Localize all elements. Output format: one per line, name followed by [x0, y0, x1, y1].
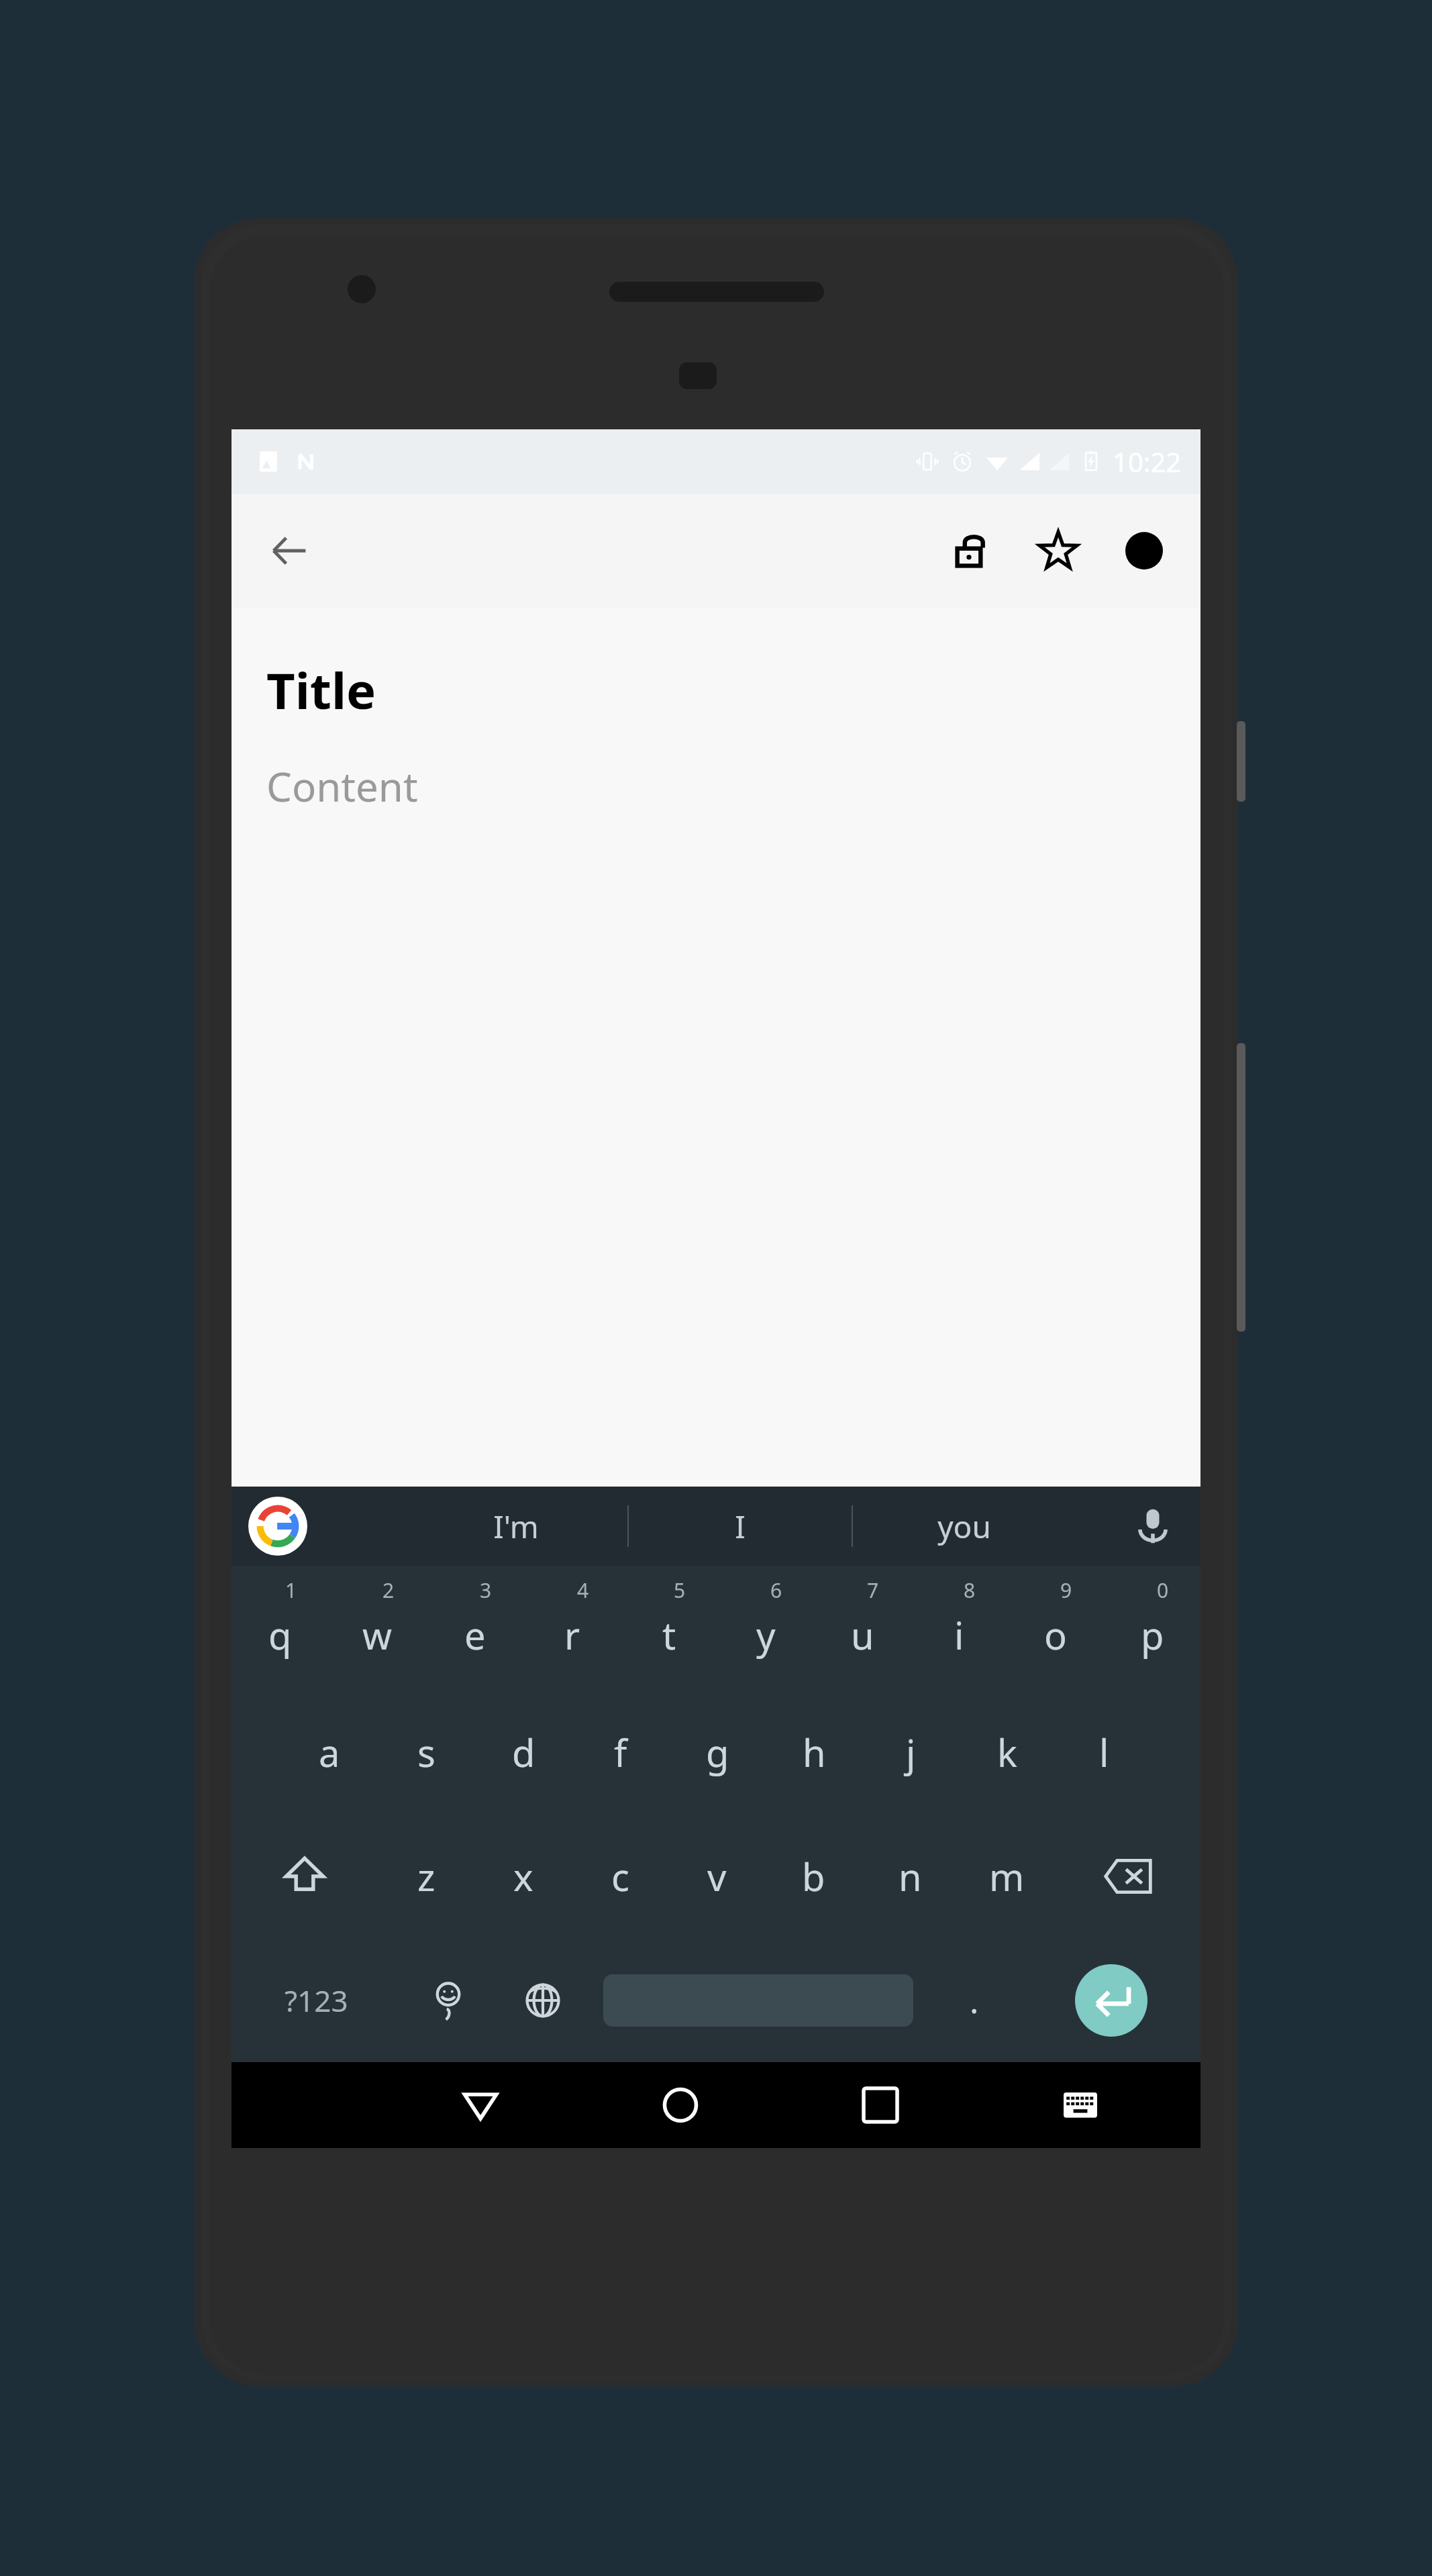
staticText: j	[906, 1727, 916, 1778]
staticText: m	[989, 1851, 1025, 1902]
staticText: y	[756, 1609, 776, 1660]
staticText: h	[803, 1727, 826, 1778]
staticText: I'm	[493, 1505, 539, 1548]
button[interactable]: Back	[246, 508, 332, 594]
button[interactable]: Voice input	[1121, 1495, 1184, 1558]
button[interactable]: Space	[590, 1938, 927, 2062]
button[interactable]: 4	[523, 1566, 621, 1690]
button[interactable]: Back	[380, 2062, 580, 2148]
button[interactable]: Lock note	[929, 508, 1015, 594]
button[interactable]: a	[280, 1690, 378, 1814]
staticText: 8	[964, 1576, 976, 1604]
staticText: o	[1044, 1609, 1067, 1660]
button[interactable]: 0	[1104, 1566, 1200, 1690]
staticText: a	[319, 1727, 340, 1778]
staticText: ?123	[285, 1980, 348, 2021]
staticText: w	[362, 1609, 393, 1660]
button[interactable]: Backspace	[1055, 1814, 1200, 1938]
button[interactable]: z	[378, 1814, 475, 1938]
button[interactable]: Shift	[232, 1814, 378, 1938]
button[interactable]: 8	[911, 1566, 1007, 1690]
staticText: 0	[1157, 1576, 1169, 1604]
button[interactable]: Title	[232, 608, 1200, 1487]
staticText: p	[1141, 1609, 1164, 1660]
staticText: v	[707, 1851, 727, 1902]
staticText: .	[970, 1978, 979, 2023]
staticText: Title	[266, 656, 376, 724]
button[interactable]: .	[927, 1938, 1021, 2062]
staticText: f	[614, 1727, 627, 1778]
button[interactable]: Change language	[495, 1938, 590, 2062]
staticText: 10:22	[1113, 443, 1182, 480]
staticText: g	[706, 1727, 729, 1778]
staticText: b	[802, 1851, 825, 1902]
button[interactable]: I	[629, 1487, 852, 1566]
staticText: 7	[867, 1576, 879, 1604]
staticText: 4	[577, 1576, 589, 1604]
staticText: you	[937, 1505, 991, 1548]
button[interactable]: Favorite	[1015, 508, 1101, 594]
button[interactable]: d	[475, 1690, 572, 1814]
staticText: 1	[285, 1576, 297, 1604]
staticText: u	[851, 1609, 874, 1660]
staticText: t	[662, 1609, 676, 1660]
button[interactable]: 6	[717, 1566, 814, 1690]
button[interactable]: Emoji	[401, 1938, 495, 2062]
staticText: 5	[674, 1576, 686, 1604]
staticText: z	[417, 1851, 436, 1902]
staticText: e	[464, 1609, 486, 1660]
staticText: 3	[480, 1576, 492, 1604]
button[interactable]: f	[572, 1690, 669, 1814]
staticText: i	[954, 1609, 964, 1660]
staticText: d	[512, 1727, 535, 1778]
button[interactable]: s	[378, 1690, 475, 1814]
button[interactable]: 1	[232, 1566, 329, 1690]
button[interactable]: ?123	[232, 1938, 401, 2062]
staticText: x	[513, 1851, 533, 1902]
button[interactable]: k	[959, 1690, 1056, 1814]
button[interactable]: 7	[814, 1566, 911, 1690]
button[interactable]: Note color	[1101, 508, 1187, 594]
staticText: s	[417, 1727, 436, 1778]
staticText: 2	[382, 1576, 395, 1604]
staticText: I	[735, 1505, 746, 1548]
button[interactable]: Recent apps	[780, 2062, 980, 2148]
button[interactable]: m	[958, 1814, 1055, 1938]
button[interactable]: h	[766, 1690, 862, 1814]
staticText: Content	[266, 759, 418, 814]
button[interactable]: b	[765, 1814, 862, 1938]
button[interactable]: c	[572, 1814, 668, 1938]
button[interactable]: j	[862, 1690, 959, 1814]
staticText: l	[1099, 1727, 1109, 1778]
button[interactable]: you	[853, 1487, 1076, 1566]
staticText: k	[997, 1727, 1017, 1778]
button[interactable]: 9	[1007, 1566, 1104, 1690]
button[interactable]: g	[669, 1690, 766, 1814]
staticText: n	[899, 1851, 922, 1902]
staticText: q	[268, 1609, 292, 1660]
staticText: 6	[770, 1576, 782, 1604]
button[interactable]: v	[668, 1814, 765, 1938]
button[interactable]: Home	[580, 2062, 780, 2148]
button[interactable]: Google search	[246, 1495, 309, 1558]
staticText: r	[564, 1609, 580, 1660]
button[interactable]: 5	[621, 1566, 717, 1690]
button[interactable]: Switch keyboard	[980, 2062, 1180, 2148]
button[interactable]: I'm	[405, 1487, 627, 1566]
button[interactable]: n	[862, 1814, 958, 1938]
button[interactable]: 2	[329, 1566, 426, 1690]
staticText: 9	[1060, 1576, 1072, 1604]
button[interactable]: Enter	[1021, 1938, 1200, 2062]
button[interactable]: x	[475, 1814, 572, 1938]
button[interactable]: 3	[426, 1566, 523, 1690]
button[interactable]: l	[1056, 1690, 1152, 1814]
staticText: c	[611, 1851, 629, 1902]
